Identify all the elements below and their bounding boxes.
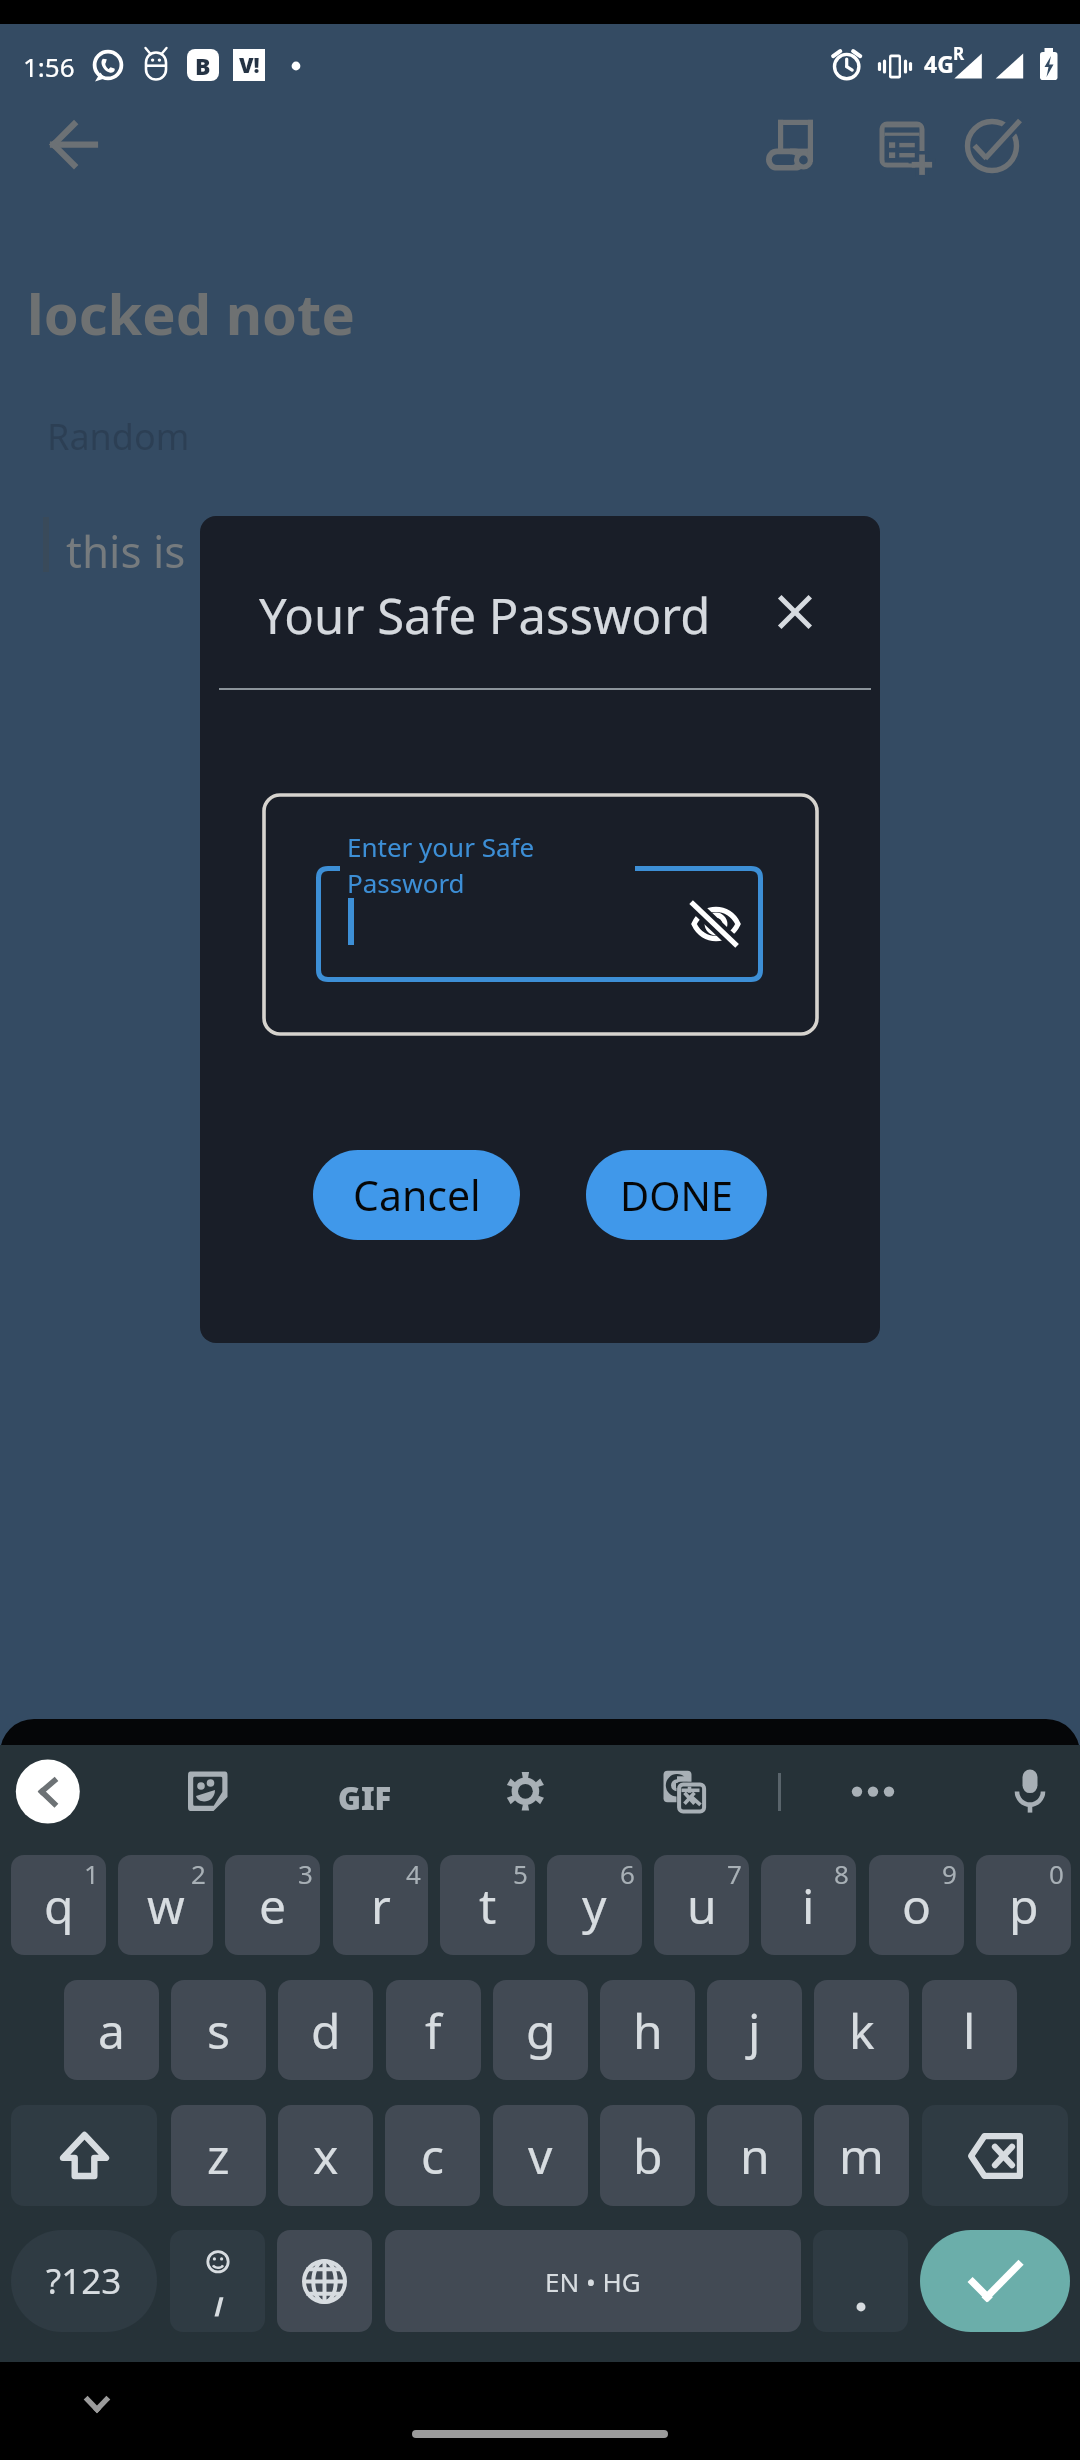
button[interactable]: x bbox=[278, 2105, 373, 2206]
button[interactable]: Back bbox=[16, 1760, 80, 1824]
staticText: B bbox=[195, 50, 211, 81]
staticText: j bbox=[748, 1998, 761, 2063]
button[interactable]: Add checklist bbox=[854, 98, 950, 194]
staticText: Random bbox=[47, 412, 190, 461]
button[interactable]: Close bbox=[759, 576, 831, 648]
button[interactable]: d bbox=[278, 1980, 373, 2080]
button[interactable]: c bbox=[385, 2105, 480, 2206]
button[interactable]: o bbox=[869, 1855, 964, 1955]
button[interactable]: EN • HG bbox=[385, 2230, 801, 2332]
button[interactable] bbox=[277, 2230, 372, 2332]
staticText: x bbox=[313, 2123, 339, 2188]
staticText: r bbox=[371, 1873, 391, 1938]
button[interactable] bbox=[813, 2230, 908, 2332]
staticText: d bbox=[311, 1998, 341, 2063]
button[interactable]: p bbox=[976, 1855, 1071, 1955]
staticText: this is bbox=[66, 521, 186, 581]
staticText: 7 bbox=[727, 1856, 742, 1891]
button[interactable]: Cancel bbox=[313, 1150, 520, 1240]
staticText: 6 bbox=[620, 1856, 635, 1891]
button[interactable]: b bbox=[600, 2105, 695, 2206]
button[interactable] bbox=[920, 2230, 1070, 2332]
staticText: n bbox=[740, 2123, 770, 2188]
button[interactable] bbox=[922, 2105, 1068, 2206]
button[interactable]: Hide keyboard bbox=[61, 2368, 133, 2440]
staticText: 4G bbox=[924, 48, 954, 79]
button[interactable]: q bbox=[11, 1855, 106, 1955]
staticText: GIF bbox=[338, 1777, 392, 1819]
staticText: m bbox=[839, 2123, 884, 2188]
staticText: f bbox=[425, 1998, 442, 2063]
staticText: 2 bbox=[191, 1856, 206, 1891]
staticText: 0 bbox=[1049, 1856, 1064, 1891]
button[interactable]: m bbox=[814, 2105, 909, 2206]
staticText: i bbox=[802, 1873, 815, 1938]
button[interactable]: g bbox=[493, 1980, 588, 2080]
staticText: locked note bbox=[27, 275, 355, 351]
button[interactable]: h bbox=[600, 1980, 695, 2080]
button[interactable]: Stickers bbox=[176, 1759, 240, 1823]
button[interactable]: Back bbox=[26, 96, 122, 192]
staticText: EN • HG bbox=[545, 2264, 641, 2299]
button[interactable]: w bbox=[118, 1855, 213, 1955]
button[interactable]: a bbox=[64, 1980, 159, 2080]
staticText: 4 bbox=[406, 1856, 421, 1891]
button[interactable]: s bbox=[171, 1980, 266, 2080]
staticText: ?123 bbox=[46, 2257, 122, 2305]
button[interactable]: k bbox=[814, 1980, 909, 2080]
staticText: R bbox=[953, 42, 965, 65]
button[interactable]: DONE bbox=[586, 1150, 767, 1240]
button[interactable]: Settings bbox=[493, 1759, 557, 1823]
staticText: V! bbox=[239, 51, 260, 80]
staticText: y bbox=[582, 1873, 607, 1938]
button[interactable] bbox=[170, 2230, 265, 2332]
staticText: Cancel bbox=[353, 1167, 481, 1223]
button[interactable]: l bbox=[922, 1980, 1017, 2080]
staticText: p bbox=[1009, 1873, 1039, 1938]
button[interactable]: f bbox=[386, 1980, 481, 2080]
button[interactable]: u bbox=[654, 1855, 749, 1955]
staticText: h bbox=[633, 1998, 663, 2063]
staticText: b bbox=[633, 2123, 663, 2188]
staticText: w bbox=[147, 1873, 185, 1938]
staticText: 8 bbox=[834, 1856, 849, 1891]
button[interactable]: t bbox=[440, 1855, 535, 1955]
staticText: v bbox=[528, 2123, 553, 2188]
button[interactable]: i bbox=[761, 1855, 856, 1955]
button[interactable]: Show password bbox=[678, 886, 754, 962]
button[interactable]: v bbox=[493, 2105, 588, 2206]
staticText: Your Safe Password bbox=[259, 582, 711, 649]
button[interactable]: Done bbox=[944, 98, 1040, 194]
staticText: k bbox=[849, 1998, 875, 2063]
button[interactable]: e bbox=[225, 1855, 320, 1955]
button[interactable]: Voice input bbox=[998, 1759, 1062, 1823]
button[interactable]: z bbox=[171, 2105, 266, 2206]
staticText: o bbox=[902, 1873, 932, 1938]
staticText: 1:56 bbox=[23, 49, 75, 84]
button[interactable]: Translate bbox=[652, 1759, 716, 1823]
staticText: 5 bbox=[513, 1856, 528, 1891]
button[interactable]: j bbox=[707, 1980, 802, 2080]
staticText: DONE bbox=[620, 1168, 734, 1222]
button[interactable]: r bbox=[333, 1855, 428, 1955]
staticText: q bbox=[44, 1873, 74, 1938]
staticText: z bbox=[207, 2123, 230, 2188]
button[interactable]: GIF bbox=[338, 1777, 392, 1819]
staticText: 1 bbox=[84, 1856, 99, 1891]
staticText: g bbox=[526, 1998, 556, 2063]
staticText: 3 bbox=[298, 1856, 313, 1891]
staticText: Enter your Safe Password bbox=[347, 829, 535, 901]
button[interactable]: Note format bbox=[744, 98, 840, 194]
button[interactable]: ?123 bbox=[11, 2230, 157, 2332]
staticText: t bbox=[479, 1873, 497, 1938]
staticText: u bbox=[687, 1873, 717, 1938]
staticText: s bbox=[207, 1998, 230, 2063]
staticText: a bbox=[98, 1998, 125, 2063]
staticText: 9 bbox=[942, 1856, 957, 1891]
staticText: c bbox=[421, 2123, 445, 2188]
button[interactable]: More options bbox=[841, 1759, 905, 1823]
button[interactable]: n bbox=[707, 2105, 802, 2206]
staticText: l bbox=[963, 1998, 976, 2063]
button[interactable]: y bbox=[547, 1855, 642, 1955]
button[interactable] bbox=[11, 2105, 157, 2206]
